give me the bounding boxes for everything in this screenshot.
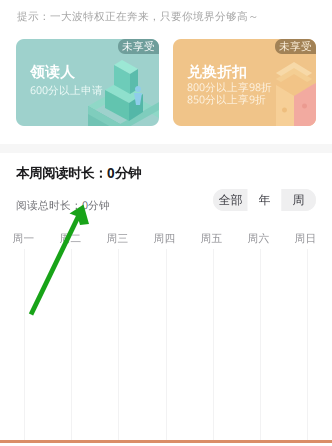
staticText: 周日 xyxy=(294,232,316,245)
staticText: 周六 xyxy=(247,232,269,245)
staticText: 兑换折扣 xyxy=(187,63,247,81)
staticText: 周三 xyxy=(106,232,128,245)
staticText: 未享受 xyxy=(279,40,312,53)
button[interactable]: 周 xyxy=(281,189,315,211)
staticText: 全部 xyxy=(218,193,242,207)
staticText: 年 xyxy=(258,193,270,207)
staticText: 850分以上享9折 xyxy=(187,92,266,106)
staticText: 周一 xyxy=(12,232,34,245)
staticText: 未享受 xyxy=(122,40,155,53)
staticText: 周四 xyxy=(153,232,175,245)
button[interactable]: 未享受 xyxy=(173,39,316,126)
button[interactable]: 年 xyxy=(247,189,281,211)
staticText: 600分以上申请 xyxy=(30,83,103,97)
staticText: 领读人 xyxy=(30,63,75,81)
button[interactable]: 全部 xyxy=(213,189,247,211)
staticText: 周二 xyxy=(59,232,81,245)
staticText: 周五 xyxy=(200,232,222,245)
staticText: 本周阅读时长：0分钟 xyxy=(16,164,141,182)
staticText: 800分以上享98折 xyxy=(187,80,272,94)
staticText: 阅读总时长：0分钟 xyxy=(16,198,110,212)
staticText: 周 xyxy=(292,193,304,207)
button[interactable]: 未享受 xyxy=(16,39,159,126)
staticText: 提示：一大波特权正在奔来，只要你境界分够高～ xyxy=(17,10,259,23)
